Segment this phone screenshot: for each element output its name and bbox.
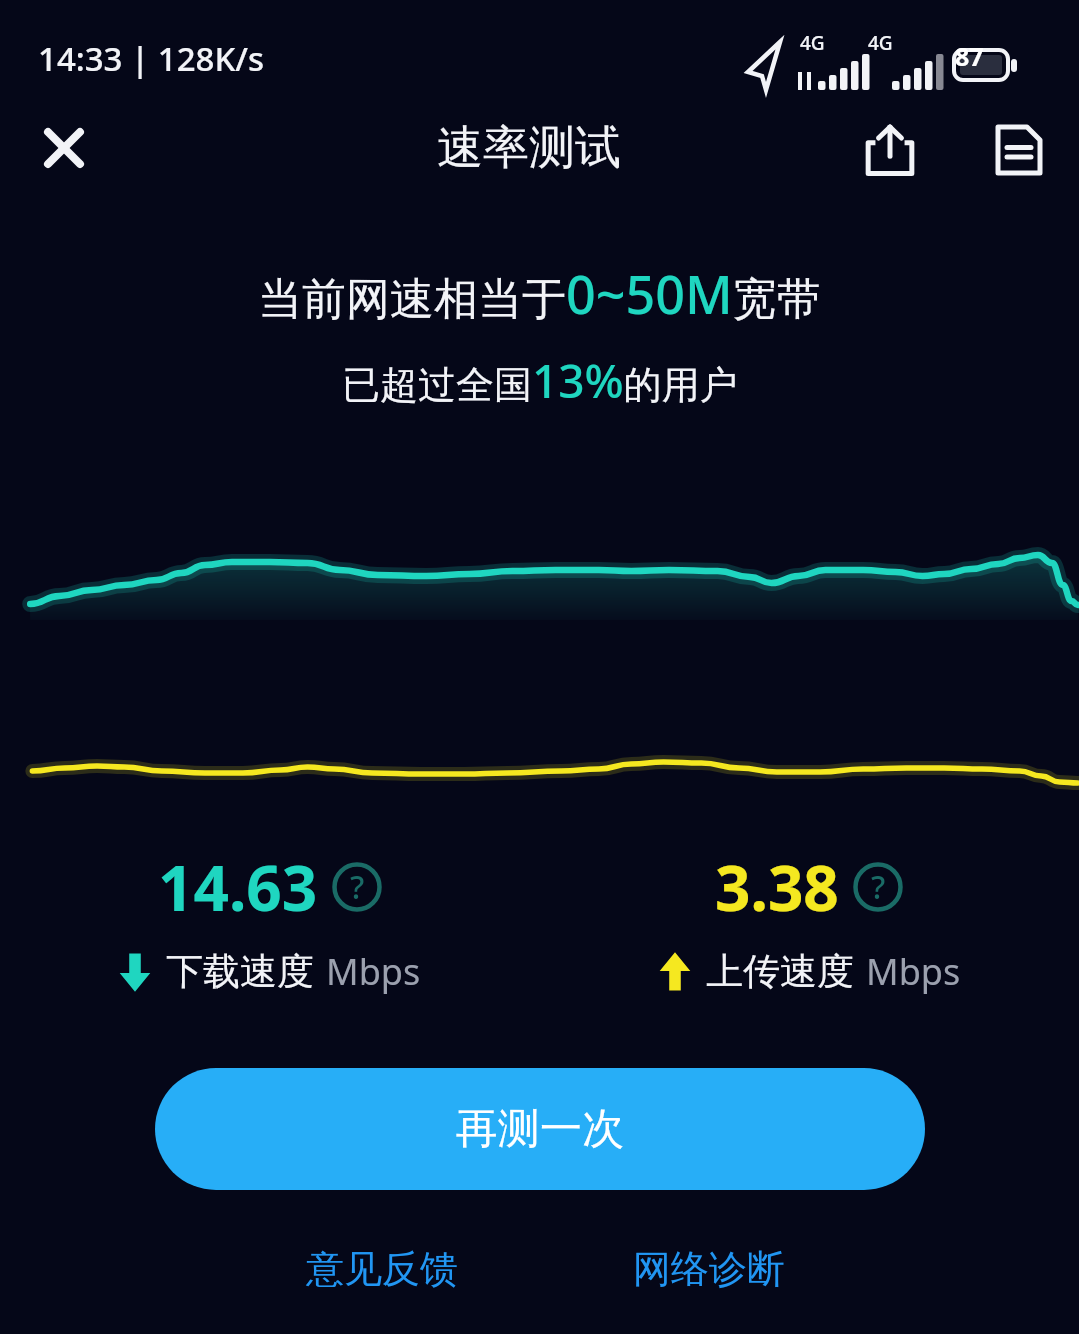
staticText: 再测一次 <box>456 1103 624 1156</box>
staticText: 速率测试 <box>437 119 621 177</box>
staticText: 网络诊断 <box>633 1245 785 1293</box>
button[interactable]: 意见反馈 <box>306 1245 458 1293</box>
staticText: 4G <box>868 30 893 56</box>
staticText: 当前网速相当于0~50M宽带 <box>258 258 821 329</box>
staticText: 下载速度 <box>166 948 314 995</box>
staticText: 87 <box>955 39 984 73</box>
button[interactable]: 再测一次 <box>155 1068 925 1190</box>
button[interactable]: 3.38 <box>539 845 1079 996</box>
button[interactable]: 14.63 <box>0 845 539 996</box>
staticText: 4G <box>800 30 825 56</box>
staticText: 14:33 | 128K/s <box>38 36 265 81</box>
staticText: 上传速度 <box>706 948 854 995</box>
staticText: ? <box>871 865 886 909</box>
other: Info <box>853 862 903 912</box>
staticText: ? <box>350 865 365 909</box>
staticText: 3.38 <box>715 845 839 929</box>
staticText: 14.63 <box>158 845 318 929</box>
button[interactable]: Report <box>977 108 1061 192</box>
staticText: Mbps <box>326 947 421 996</box>
staticText: 已超过全国13%的用户 <box>342 349 738 412</box>
staticText: Mbps <box>866 947 961 996</box>
button[interactable]: 网络诊断 <box>633 1245 785 1293</box>
staticText: 意见反馈 <box>306 1245 458 1293</box>
button[interactable]: Close <box>22 106 106 190</box>
other: Info <box>332 862 382 912</box>
button[interactable]: Share <box>848 108 932 192</box>
